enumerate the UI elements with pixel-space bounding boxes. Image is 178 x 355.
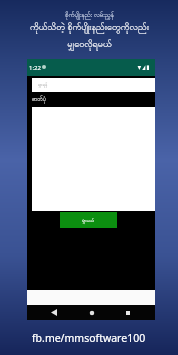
button[interactable]: ရှာမယ်: [60, 212, 117, 228]
staticText: မျှဝေလိုရမယ်: [67, 38, 112, 51]
staticText: ဓာတ်ပုံ: [32, 96, 46, 104]
staticText: စိုက်ပျိုးနည်း လမ်းညွှန်: [65, 10, 114, 20]
staticText: fb.me/mmsoftware100: [32, 331, 146, 345]
button[interactable]: Home: [84, 305, 99, 320]
staticText: 1:22: [29, 64, 41, 72]
staticText: ရှာမယ်: [82, 217, 95, 224]
button[interactable]: Recent apps: [120, 305, 136, 320]
button[interactable]: Back: [44, 305, 64, 320]
staticText: ရှာရန်: [38, 82, 48, 89]
staticText: ကိုယ်သိတဲ့ စိုက်ပျိုးနည်းတွေကိုလည်း: [30, 20, 149, 34]
